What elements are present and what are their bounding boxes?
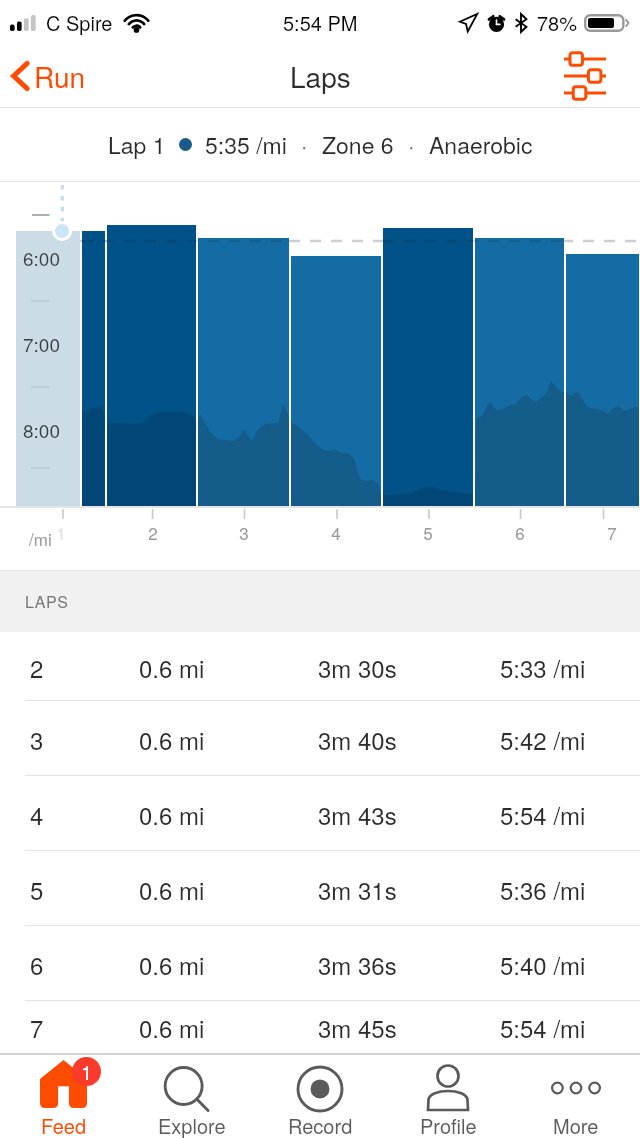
staticText: 4 (30, 797, 44, 831)
staticText: Lap 1 (108, 128, 166, 161)
button[interactable]: Record (256, 1055, 384, 1137)
staticText: 0.6 mi (139, 797, 205, 831)
staticText: 5:42 /mi (500, 722, 586, 756)
staticText: 2 (30, 650, 44, 684)
staticText: · (408, 128, 415, 161)
staticText: 4 (316, 520, 356, 544)
staticText: 8:00 (23, 416, 60, 443)
staticText: 5:36 /mi (500, 872, 586, 906)
staticText: Record (288, 1111, 353, 1138)
staticText: 0.6 mi (139, 947, 205, 981)
staticText: 3m 45s (318, 1010, 397, 1044)
staticText: 7 (30, 1010, 44, 1044)
button[interactable]: 5 (0, 851, 640, 926)
staticText: 0.6 mi (139, 872, 205, 906)
staticText: 5 (30, 872, 44, 906)
button[interactable]: 1 (0, 1055, 128, 1137)
staticText: 3 (30, 722, 44, 756)
staticText: 5:40 /mi (500, 947, 586, 981)
staticText: 3m 30s (318, 650, 397, 684)
button[interactable]: Profile (384, 1055, 512, 1137)
staticText: Anaerobic (429, 128, 533, 161)
staticText: 5:54 PM (283, 8, 358, 37)
button[interactable]: 3 (0, 701, 640, 776)
staticText: · (301, 128, 308, 161)
staticText: More (553, 1111, 599, 1138)
staticText: 3m 31s (318, 872, 397, 906)
staticText: 5:54 /mi (500, 1010, 586, 1044)
staticText: 78% (537, 8, 578, 37)
button[interactable]: 7 (0, 1001, 640, 1053)
staticText: 3m 36s (318, 947, 397, 981)
staticText: 5 (408, 520, 448, 544)
staticText: Feed (41, 1111, 87, 1138)
staticText: 0.6 mi (139, 650, 205, 684)
staticText: 1 (81, 1057, 93, 1086)
staticText: 6 (500, 520, 540, 544)
staticText: 3 (224, 520, 264, 544)
staticText: Explore (158, 1111, 226, 1138)
staticText: 1 (41, 520, 81, 544)
button[interactable]: 6 (0, 926, 640, 1001)
staticText: Laps (290, 56, 351, 96)
staticText: 2 (133, 520, 173, 544)
staticText: 7:00 (23, 330, 60, 357)
staticText: 0.6 mi (139, 1010, 205, 1044)
button[interactable]: Explore (128, 1055, 256, 1137)
staticText: 3m 40s (318, 722, 397, 756)
staticText: LAPS (25, 590, 69, 613)
staticText: 5:54 /mi (500, 797, 586, 831)
staticText: 5:35 /mi (205, 128, 287, 161)
button[interactable]: Filter settings (548, 47, 640, 105)
staticText: C Spire (46, 8, 113, 37)
staticText: 6 (30, 947, 44, 981)
staticText: Profile (420, 1111, 477, 1138)
staticText: /mi (29, 526, 52, 550)
button[interactable]: More (512, 1055, 640, 1137)
staticText: 0.6 mi (139, 722, 205, 756)
button[interactable]: Run (0, 48, 100, 104)
staticText: 7 (592, 520, 632, 544)
button[interactable]: 4 (0, 776, 640, 851)
staticText: 5:33 /mi (500, 650, 586, 684)
button[interactable]: 2 (0, 632, 640, 701)
staticText: 3m 43s (318, 797, 397, 831)
staticText: 6:00 (23, 244, 60, 271)
staticText: Zone 6 (322, 128, 394, 161)
staticText: Run (34, 56, 86, 96)
